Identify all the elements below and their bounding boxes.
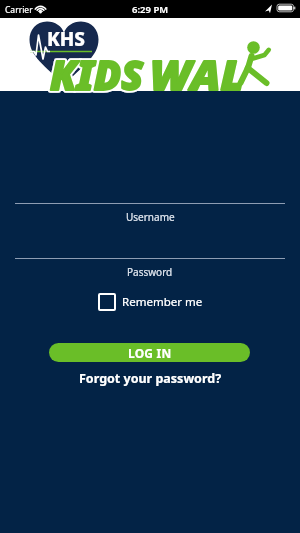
staticText: Password xyxy=(127,265,173,279)
staticText: 6:29 PM xyxy=(132,3,169,16)
staticText: Forgot your password? xyxy=(79,370,222,387)
button[interactable]: LOG IN xyxy=(49,343,250,362)
button[interactable]: Password xyxy=(0,265,300,279)
staticText: Username xyxy=(126,210,175,224)
staticText: WAL xyxy=(150,47,245,101)
staticText: LOG IN xyxy=(128,345,172,361)
button[interactable]: Username xyxy=(0,210,300,224)
staticText: WAL xyxy=(150,47,245,101)
staticText: Carrier xyxy=(5,4,33,16)
staticText: KIDS xyxy=(50,47,144,101)
button[interactable]: Remember me xyxy=(0,292,300,312)
staticText: Remember me xyxy=(122,294,203,310)
button[interactable]: Forgot your password? xyxy=(0,370,300,387)
staticText: KIDS xyxy=(50,47,144,101)
staticText: KHS xyxy=(47,26,86,52)
staticText: KIDS xyxy=(50,47,144,101)
